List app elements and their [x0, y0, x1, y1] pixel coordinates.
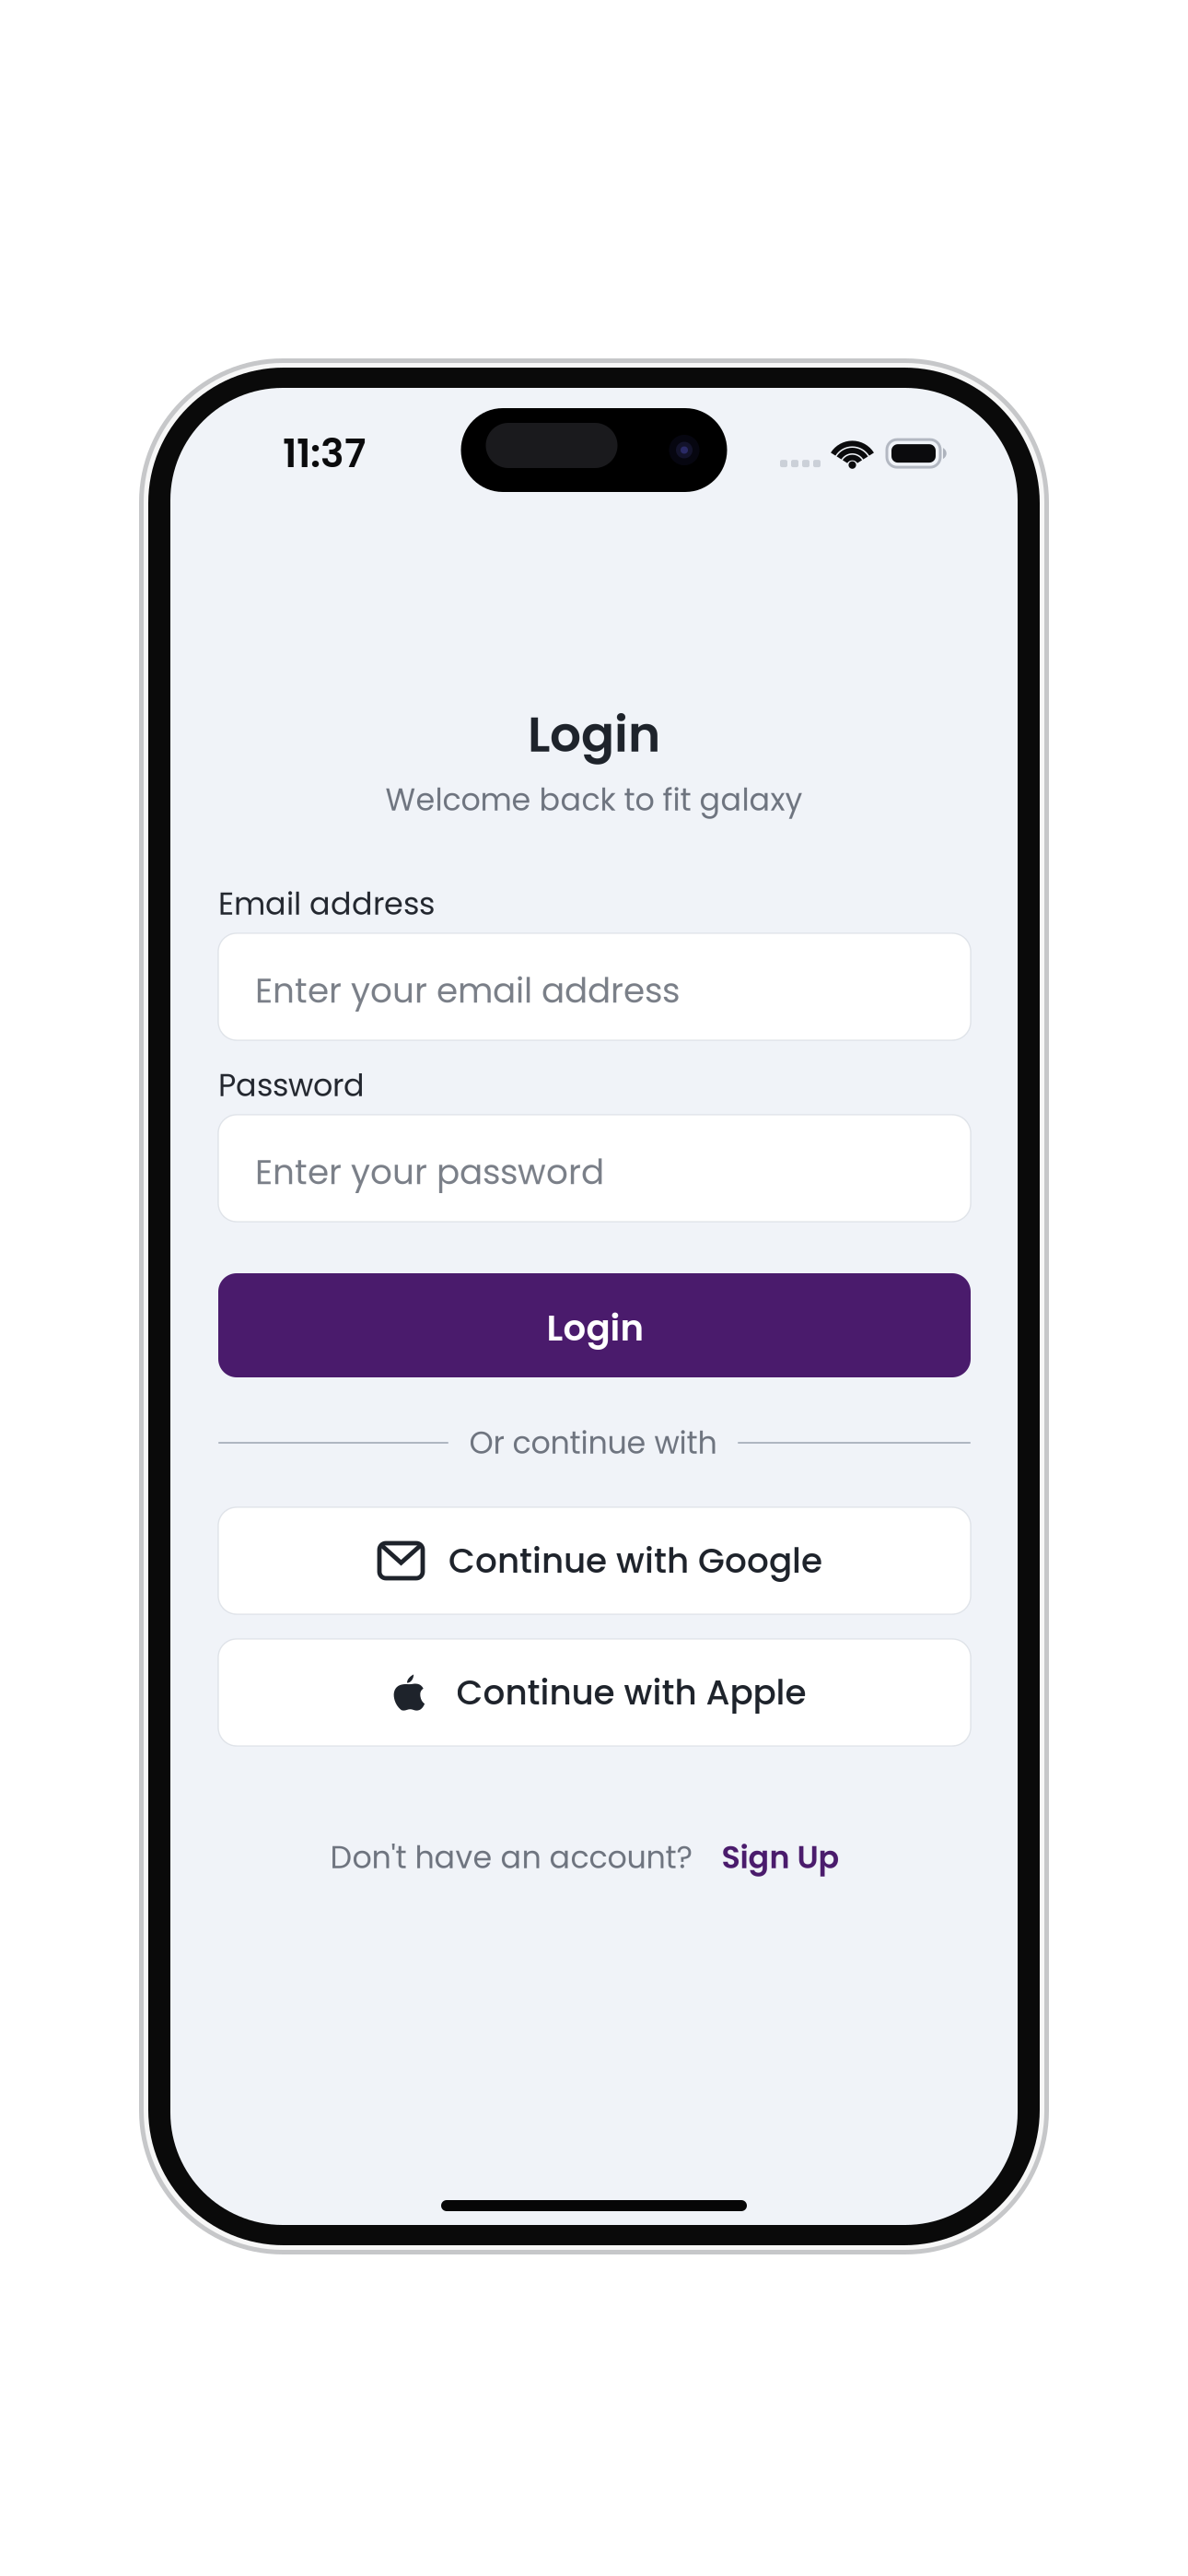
staticText: Email address [218, 882, 435, 925]
button[interactable]: Enter your email address [218, 933, 971, 1040]
staticText: Or continue with [469, 1421, 717, 1464]
staticText: Continue with Apple [456, 1668, 806, 1717]
staticText: Enter your password [255, 1148, 604, 1196]
button[interactable]: Continue with Apple [218, 1639, 971, 1746]
button[interactable]: Continue with Google [218, 1507, 971, 1614]
staticText: Login [528, 700, 660, 769]
staticText: Enter your email address [255, 966, 680, 1015]
staticText: Sign Up [722, 1836, 839, 1879]
staticText: Continue with Google [448, 1537, 822, 1585]
button[interactable]: Sign Up [722, 1830, 839, 1884]
button[interactable]: Enter your password [218, 1115, 971, 1222]
staticText: Login [547, 1303, 644, 1353]
button[interactable]: Login [218, 1273, 971, 1377]
staticText: 11:37 [283, 426, 366, 481]
staticText: Welcome back to fit galaxy [385, 778, 803, 821]
staticText: Don't have an account? [330, 1836, 692, 1879]
staticText: Password [218, 1064, 365, 1107]
